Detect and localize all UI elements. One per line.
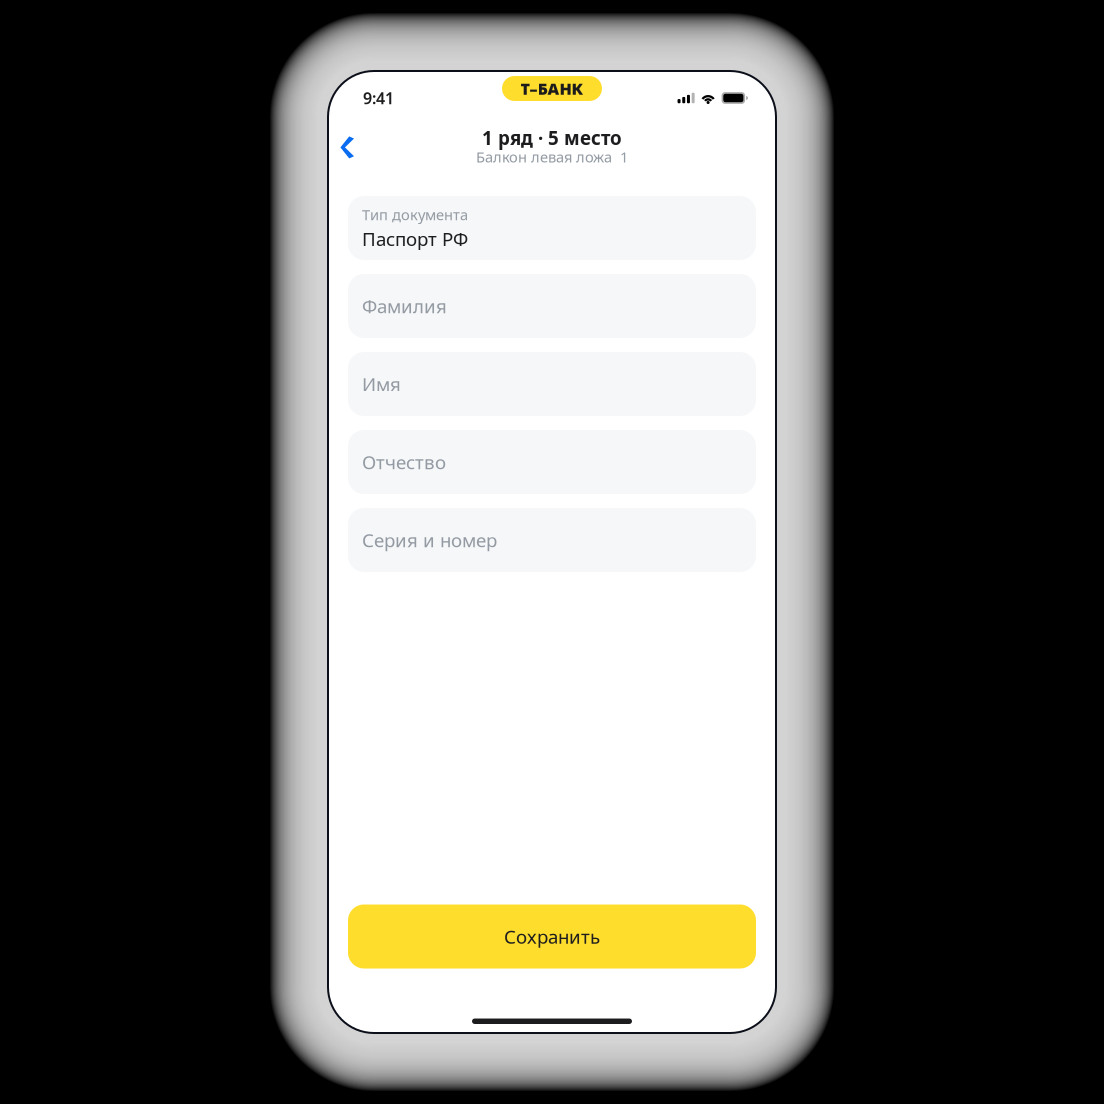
staticText: 9:41 (363, 87, 394, 109)
button[interactable]: Назад (324, 125, 368, 169)
button[interactable]: Серия и номер (348, 508, 756, 572)
button[interactable]: Имя (348, 352, 756, 416)
button[interactable]: Сохранить (348, 904, 756, 968)
staticText: Балкон левая ложа 1 (476, 147, 628, 167)
staticText: Сохранить (504, 924, 600, 949)
staticText: Фамилия (362, 294, 447, 318)
button[interactable]: Фамилия (348, 274, 756, 338)
staticText: Имя (362, 372, 401, 396)
staticText: Серия и номер (362, 528, 497, 552)
button[interactable]: Отчество (348, 430, 756, 494)
staticText: Паспорт РФ (362, 226, 468, 251)
staticText: T–БАНК (520, 78, 583, 99)
staticText: 1 ряд · 5 место (482, 125, 622, 150)
button[interactable]: Тип документа (348, 196, 756, 260)
staticText: Отчество (362, 450, 446, 474)
staticText: Тип документа (362, 205, 468, 224)
